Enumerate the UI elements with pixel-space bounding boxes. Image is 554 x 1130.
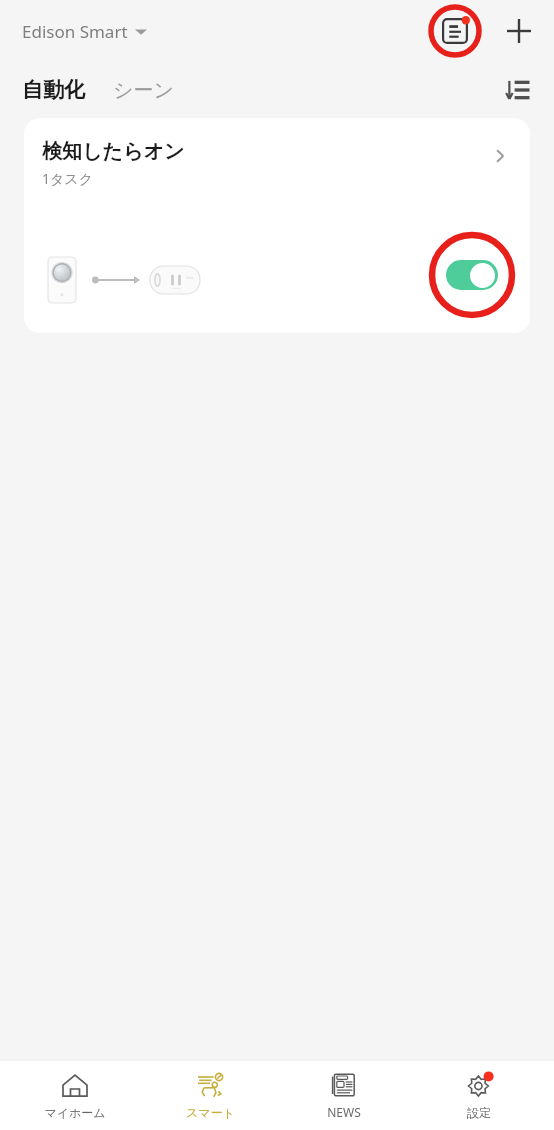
button[interactable]: 検知したらオン [24,118,530,333]
staticText: マイホーム [44,1105,106,1120]
staticText: 1タスク [42,169,93,188]
button[interactable]: Sort [496,68,540,112]
button[interactable]: シーン [109,72,178,109]
button[interactable]: 自動化 [18,71,89,109]
button[interactable]: Automation log [428,4,482,58]
button[interactable]: マイホーム [15,1067,135,1124]
button[interactable]: Edison Smart [20,16,149,47]
staticText: Edison Smart [22,20,128,43]
staticText: スマート [186,1105,235,1120]
staticText: 自動化 [22,77,85,103]
staticText: 検知したらオン [42,139,185,164]
staticText: NEWS [327,1104,361,1120]
button[interactable]: Add automation [496,8,542,54]
staticText: シーン [113,78,174,103]
button[interactable]: スマート [150,1067,270,1124]
button[interactable]: Automation enabled toggle [446,260,498,290]
button[interactable]: Open details [480,136,520,176]
staticText: 設定 [467,1105,491,1120]
button[interactable]: 設定 [419,1067,539,1124]
button[interactable]: NEWS [284,1066,404,1124]
